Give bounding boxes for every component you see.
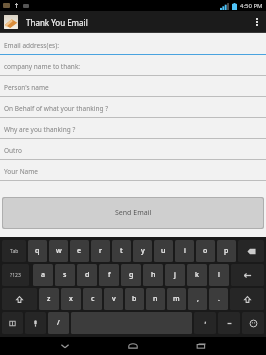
button[interactable]: i (175, 240, 194, 262)
staticText: Email address(es): (4, 41, 59, 50)
staticText: d (85, 270, 90, 280)
button[interactable]: On Behalf of what your thanking ? (0, 99, 266, 120)
staticText: g (129, 270, 134, 280)
staticText: s (63, 270, 67, 280)
button[interactable]: o (196, 240, 215, 262)
button[interactable]: j (165, 264, 185, 286)
staticText: Thank You Email (26, 17, 88, 28)
staticText: i (184, 246, 186, 256)
staticText: b (132, 294, 137, 304)
staticText: h (151, 270, 156, 280)
staticText: n (153, 294, 158, 304)
button[interactable]: Back (54, 338, 76, 354)
staticText: Your Name (4, 167, 39, 176)
button[interactable]: r (91, 240, 110, 262)
button[interactable]: Emoji (242, 312, 264, 334)
button[interactable]: w (49, 240, 68, 262)
staticText: Why are you thanking ? (4, 125, 76, 134)
staticText: q (35, 246, 40, 256)
button[interactable]: c (83, 288, 102, 310)
button[interactable]: h (143, 264, 163, 286)
button[interactable]: Delete (238, 240, 264, 262)
button[interactable]: p (217, 240, 236, 262)
button[interactable]: l (209, 264, 229, 286)
button[interactable]: . (209, 288, 228, 310)
button[interactable]: f (99, 264, 119, 286)
button[interactable]: / (48, 312, 69, 334)
button[interactable]: e (70, 240, 89, 262)
button[interactable]: Keyboard settings (2, 312, 23, 334)
staticText: t (120, 246, 123, 256)
button[interactable]: Voice input (25, 312, 46, 334)
button[interactable]: Outro (0, 141, 266, 162)
staticText: Tab (10, 248, 19, 255)
button[interactable]: Why are you thanking ? (0, 120, 266, 141)
button[interactable]: x (61, 288, 81, 310)
staticText: company name to thank: (4, 62, 81, 71)
button[interactable]: z (39, 288, 59, 310)
button[interactable]: y (133, 240, 152, 262)
button[interactable]: q (28, 240, 47, 262)
staticText: Outro (4, 146, 22, 155)
staticText: , (197, 294, 199, 304)
button[interactable]: Shift (2, 288, 37, 310)
staticText: u (161, 246, 166, 256)
staticText: w (56, 246, 62, 256)
button[interactable]: Recents (190, 338, 212, 354)
staticText: o (203, 246, 208, 256)
button[interactable]: a (33, 264, 53, 286)
button[interactable]: Apostrophe (194, 312, 216, 334)
staticText: / (57, 318, 60, 328)
staticText: x (69, 294, 73, 304)
button[interactable]: Symbols (218, 312, 240, 334)
button[interactable]: Enter (231, 264, 264, 286)
staticText: f (108, 270, 111, 280)
button[interactable]: d (77, 264, 97, 286)
button[interactable]: Send Email (3, 198, 263, 228)
button[interactable]: Email address(es): (0, 36, 266, 57)
button[interactable]: Your Name (0, 162, 266, 183)
staticText: Person's name (4, 83, 49, 92)
staticText: r (99, 246, 102, 256)
staticText: e (77, 246, 82, 256)
staticText: v (112, 294, 116, 304)
staticText: a (41, 270, 46, 280)
staticText: Send Email (115, 208, 152, 218)
staticText: p (224, 246, 229, 256)
staticText: k (195, 270, 199, 280)
staticText: 4:50 PM (240, 2, 263, 10)
staticText: y (141, 246, 145, 256)
button[interactable]: t (112, 240, 131, 262)
button[interactable]: More options (248, 11, 266, 32)
button[interactable]: g (121, 264, 141, 286)
button[interactable]: App icon (4, 15, 18, 29)
button[interactable]: k (187, 264, 207, 286)
button[interactable]: , (188, 288, 207, 310)
staticText: c (91, 294, 95, 304)
button[interactable]: company name to thank: (0, 57, 266, 78)
staticText: On Behalf of what your thanking ? (4, 104, 108, 113)
button[interactable]: Shift (230, 288, 264, 310)
button[interactable]: u (154, 240, 173, 262)
button[interactable]: n (146, 288, 165, 310)
button[interactable]: Tab (2, 240, 26, 262)
button[interactable]: ?123 (2, 264, 29, 286)
button[interactable]: s (55, 264, 75, 286)
button[interactable]: Person's name (0, 78, 266, 99)
staticText: ?123 (10, 272, 21, 279)
button[interactable]: m (167, 288, 186, 310)
button[interactable]: b (125, 288, 144, 310)
button[interactable]: v (104, 288, 123, 310)
staticText: j (174, 270, 176, 280)
button[interactable]: Home (122, 338, 144, 354)
staticText: m (173, 294, 180, 304)
staticText: . (218, 294, 220, 304)
staticText: z (47, 294, 51, 304)
staticText: l (218, 270, 220, 280)
